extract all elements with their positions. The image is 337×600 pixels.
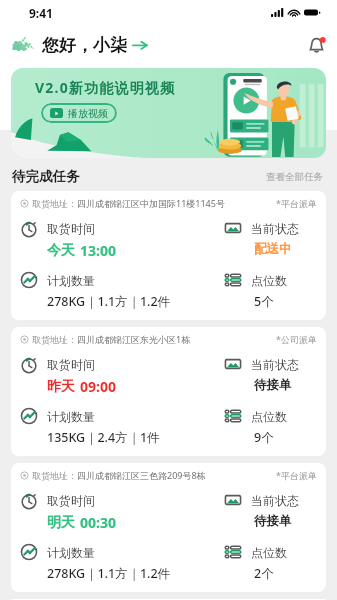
staticText: *平台派单 — [276, 469, 317, 481]
staticText: 取货时间 — [47, 493, 95, 508]
staticText: 取货地址： — [32, 198, 77, 209]
staticText: 00:30 — [80, 513, 116, 532]
staticText: 您好，小柒 — [42, 35, 127, 56]
staticText: 待完成任务 — [12, 168, 80, 185]
staticText: 取货时间 — [47, 357, 95, 372]
staticText: 当前状态 — [251, 357, 299, 372]
button[interactable]: Notifications — [306, 35, 327, 56]
staticText: 278KG｜1.1方｜1.2件 — [47, 565, 171, 582]
staticText: 四川成都锦江区中加国际11楼1145号 — [77, 197, 225, 209]
staticText: 取货地址： — [32, 470, 77, 481]
staticText: 5个 — [254, 293, 274, 310]
button[interactable]: 取货地址： — [11, 463, 326, 592]
staticText: 09:00 — [80, 377, 116, 396]
staticText: 四川成都锦江区三色路209号8栋 — [77, 469, 206, 481]
button[interactable]: 查看全部任务 — [264, 169, 325, 185]
staticText: 9:41 — [29, 5, 53, 21]
staticText: 计划数量 — [47, 273, 95, 288]
staticText: 点位数 — [251, 545, 287, 560]
staticText: 配送中 — [254, 241, 292, 257]
staticText: 四川成都锦江区东光小区1栋 — [77, 333, 191, 345]
staticText: 13:00 — [80, 241, 116, 260]
staticText: 计划数量 — [47, 545, 95, 560]
staticText: 278KG｜1.1方｜1.2件 — [47, 293, 171, 310]
staticText: 2个 — [254, 565, 274, 582]
staticText: 当前状态 — [251, 221, 299, 236]
button[interactable]: 取货地址： — [11, 327, 326, 456]
button[interactable]: 播放视频 — [41, 103, 117, 123]
staticText: *公司派单 — [276, 333, 317, 345]
staticText: 135KG｜2.4方｜1件 — [47, 429, 160, 446]
staticText: 播放视频 — [68, 107, 108, 120]
staticText: *平台派单 — [276, 197, 317, 209]
staticText: 取货地址： — [32, 334, 77, 345]
staticText: 9个 — [254, 429, 274, 446]
staticText: 取货时间 — [47, 221, 95, 236]
staticText: 待接单 — [254, 377, 292, 393]
button[interactable]: V2.0新功能说明视频 — [11, 68, 326, 158]
staticText: 点位数 — [251, 409, 287, 424]
staticText: 查看全部任务 — [266, 171, 323, 183]
staticText: 明天 — [47, 514, 75, 532]
button[interactable]: 取货地址： — [11, 191, 326, 320]
staticText: V2.0新功能说明视频 — [35, 78, 176, 97]
staticText: 点位数 — [251, 273, 287, 288]
staticText: 待接单 — [254, 513, 292, 529]
staticText: 当前状态 — [251, 493, 299, 508]
staticText: 今天 — [47, 242, 75, 260]
staticText: 昨天 — [47, 378, 75, 396]
staticText: 计划数量 — [47, 409, 95, 424]
